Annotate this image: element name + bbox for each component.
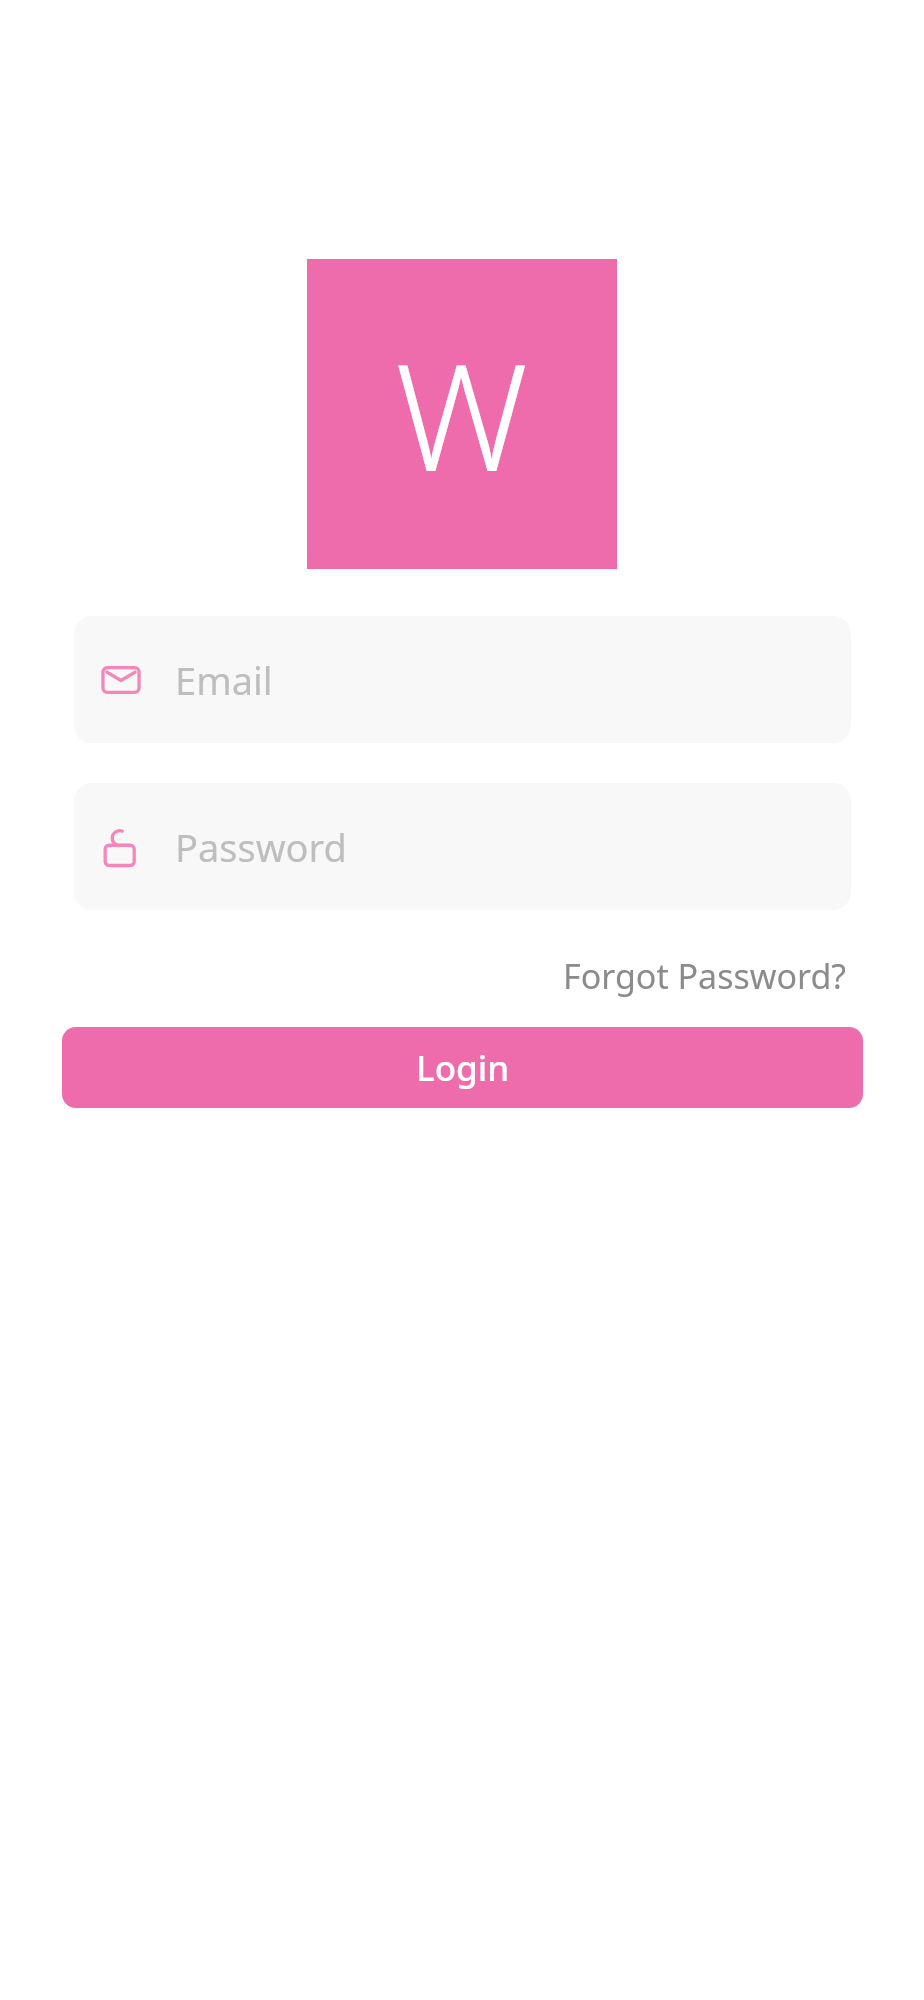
staticText: Email	[175, 654, 273, 706]
other: Password	[99, 825, 143, 869]
button[interactable]: Login	[62, 1027, 863, 1108]
button[interactable]: Email	[74, 616, 851, 743]
staticText: Login	[416, 1044, 510, 1092]
button[interactable]: Forgot Password?	[559, 947, 851, 1005]
staticText: Password	[175, 821, 347, 873]
other: Email	[99, 658, 143, 702]
button[interactable]: Password	[74, 783, 851, 910]
staticText: W	[395, 313, 529, 515]
